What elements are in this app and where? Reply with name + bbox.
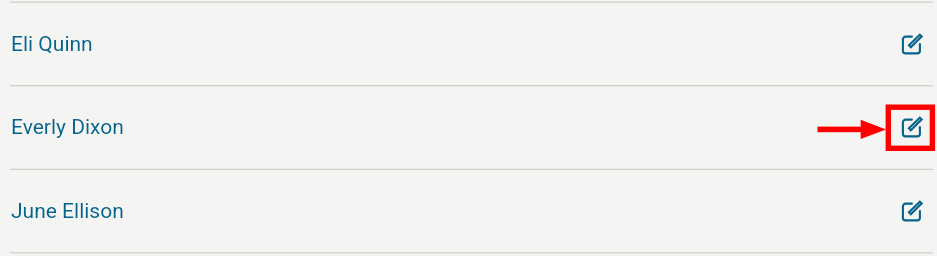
button[interactable]: Edit Everly Dixon [890,105,934,149]
button[interactable]: Edit Eli Quinn [890,22,934,66]
staticText: Eli Quinn [11,32,93,57]
button[interactable]: Edit June Ellison [890,189,934,233]
button[interactable]: June Ellison [0,169,937,253]
button[interactable]: Everly Dixon [0,85,937,169]
staticText: Everly Dixon [11,115,124,140]
staticText: June Ellison [11,199,124,224]
button[interactable]: Eli Quinn [0,2,937,86]
